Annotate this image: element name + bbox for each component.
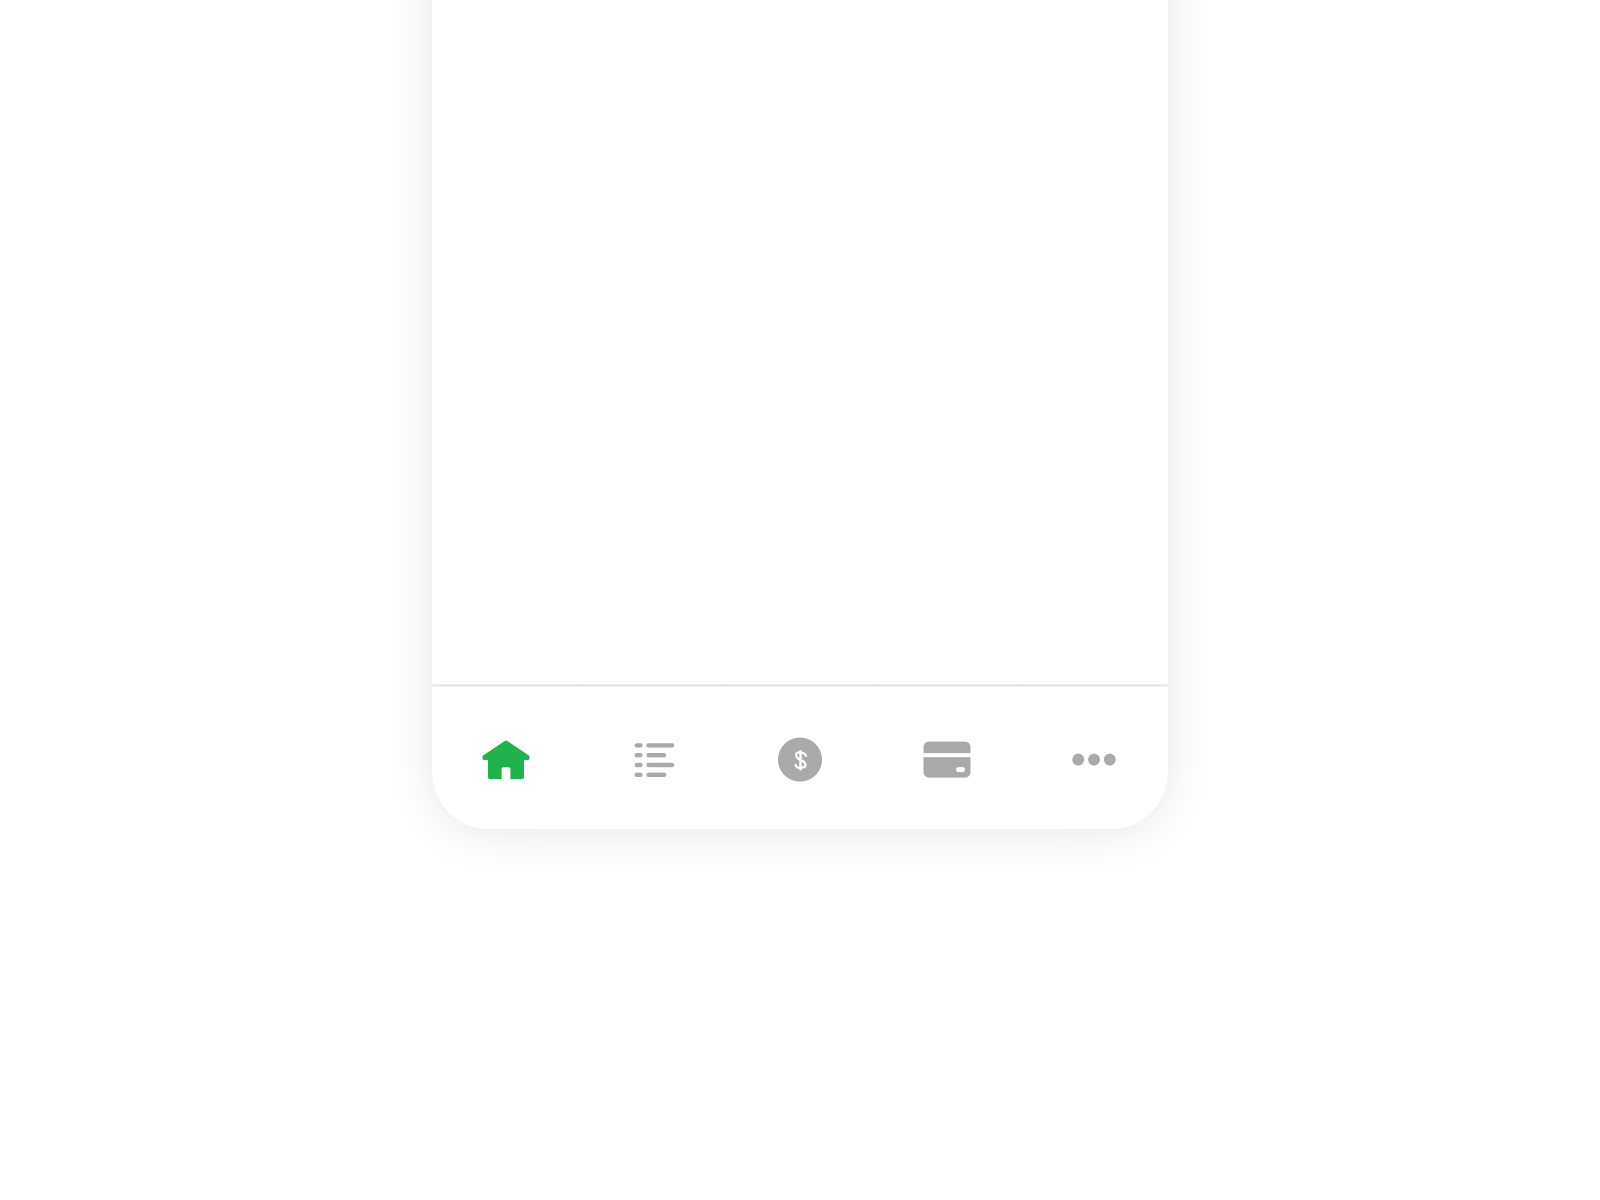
- button[interactable]: Cards: [873, 686, 1020, 829]
- button[interactable]: Payments: [726, 686, 873, 829]
- button[interactable]: Home: [432, 686, 579, 829]
- button[interactable]: Activity: [579, 686, 726, 829]
- button[interactable]: More: [1020, 686, 1167, 829]
